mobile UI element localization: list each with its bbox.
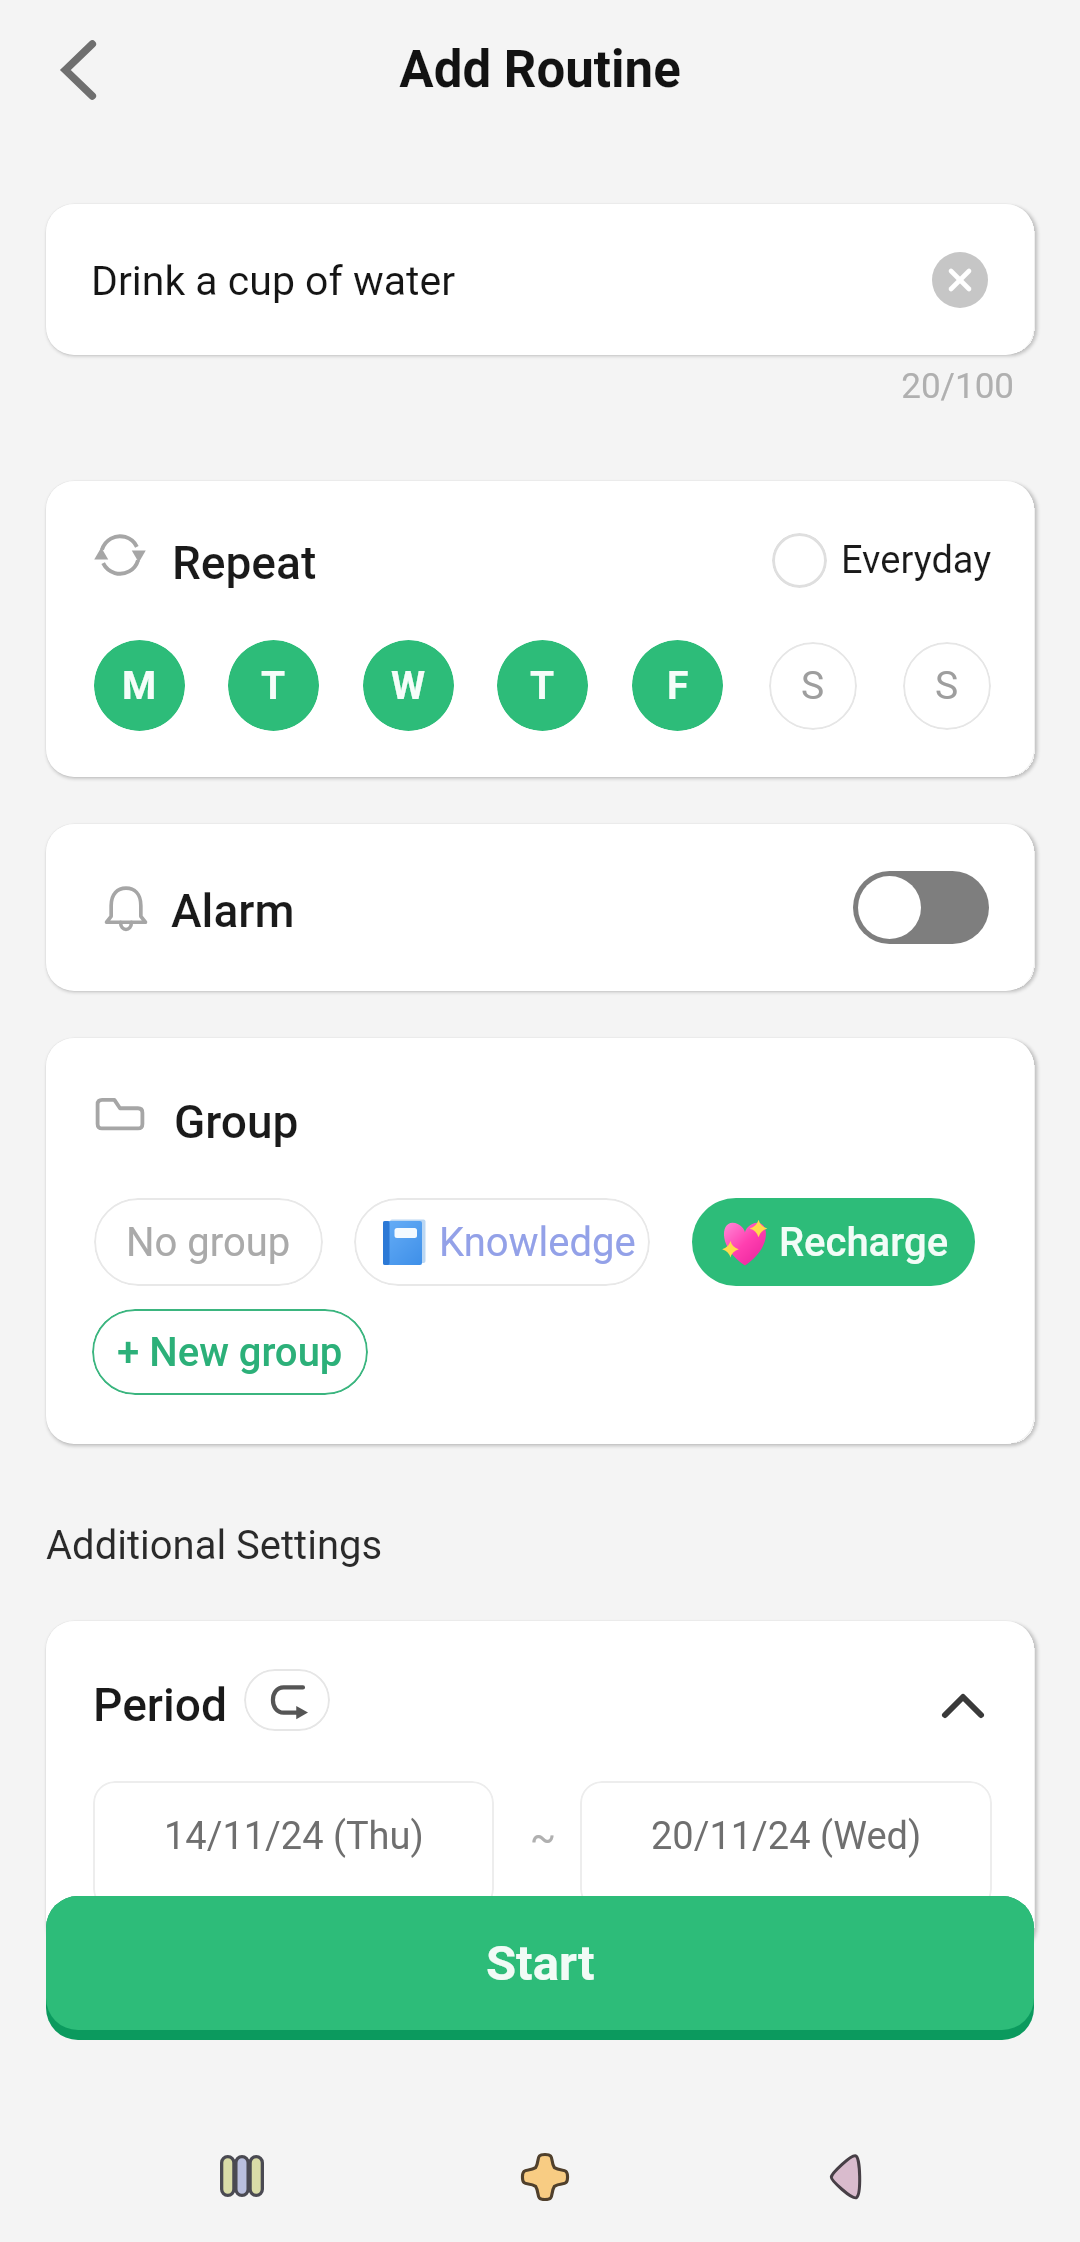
staticText: 14/11/24 (Thu) [164,1814,424,1859]
button[interactable]: Recent apps [182,2116,302,2236]
staticText: Recharge [779,1219,949,1266]
staticText: Add Routine [0,40,1080,100]
button[interactable]: F [632,640,723,731]
button[interactable]: No group [94,1198,323,1286]
staticText: Drink a cup of water [91,257,456,305]
staticText: No group [126,1219,291,1266]
button[interactable]: + New group [92,1309,368,1395]
button[interactable]: W [363,640,454,731]
button[interactable]: Everyday [772,533,992,588]
button[interactable]: 20/11/24 (Wed) [580,1781,992,1911]
button[interactable]: Clear text [932,252,988,308]
staticText: Alarm [171,884,295,938]
staticText: F [667,663,689,709]
staticText: T [261,663,286,709]
button[interactable]: Start [46,1896,1034,2030]
staticText: W [391,663,426,709]
button[interactable]: Collapse [930,1673,996,1739]
staticText: Group [174,1095,299,1149]
button[interactable]: M [94,640,185,731]
staticText: Everyday [841,538,992,583]
staticText: Repeat [172,536,317,590]
staticText: T [530,663,555,709]
button[interactable]: T [228,640,319,731]
button[interactable]: Repeat period [244,1669,330,1731]
staticText: 20/100 [0,366,1014,407]
staticText: Additional Settings [46,1522,383,1569]
staticText: S [935,663,959,709]
button[interactable]: S [903,642,991,730]
staticText: Knowledge [439,1219,636,1266]
button[interactable]: Alarm toggle [853,871,989,944]
button[interactable]: Back [785,2116,905,2236]
button[interactable]: Knowledge [354,1198,650,1286]
button[interactable]: Back [36,28,120,112]
button[interactable]: Home [485,2117,605,2237]
staticText: 20/11/24 (Wed) [651,1814,922,1859]
button[interactable]: S [769,642,857,730]
button[interactable]: Recharge [692,1198,975,1286]
button[interactable]: 14/11/24 (Thu) [93,1781,494,1911]
button[interactable] [46,824,1034,991]
staticText: Start [486,1935,595,1992]
staticText: Period [93,1678,227,1732]
staticText: M [122,663,157,709]
staticText: S [801,663,825,709]
staticText: + New group [117,1329,343,1376]
staticText: ~ [530,1816,556,1861]
button[interactable]: T [497,640,588,731]
